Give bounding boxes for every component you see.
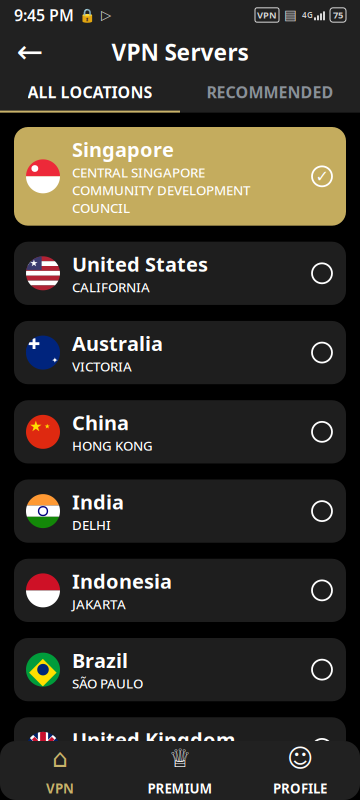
staticText: SÃO PAULO bbox=[72, 675, 143, 692]
staticText: ✓ bbox=[315, 167, 328, 185]
staticText: VPN bbox=[257, 9, 277, 21]
button[interactable]: ✚ bbox=[14, 321, 346, 384]
staticText: Australia bbox=[72, 330, 163, 356]
staticText: ← bbox=[16, 34, 43, 70]
button[interactable]: ★ bbox=[14, 400, 346, 463]
staticText: 9:45 PM bbox=[14, 4, 74, 26]
button[interactable]: ALL LOCATIONS bbox=[0, 74, 180, 112]
staticText: CITY OF LONDON bbox=[72, 754, 180, 771]
staticText: 🔒 bbox=[79, 7, 96, 23]
button[interactable]: Singapore bbox=[14, 127, 346, 226]
staticText: United Kingdom bbox=[72, 726, 236, 753]
staticText: 4G bbox=[302, 10, 313, 20]
staticText: ☺ bbox=[287, 744, 313, 773]
staticText: United States bbox=[72, 251, 208, 277]
button[interactable]: ◆ bbox=[14, 638, 346, 701]
staticText: VPN bbox=[46, 779, 74, 797]
button[interactable]: RECOMMENDED bbox=[180, 74, 360, 112]
staticText: ✕ bbox=[27, 727, 59, 771]
staticText: PREMIUM bbox=[147, 779, 212, 797]
staticText: RECOMMENDED bbox=[206, 81, 333, 103]
staticText: PROFILE bbox=[273, 779, 327, 797]
staticText: ⌂ bbox=[52, 744, 68, 773]
button[interactable]: ✕ bbox=[14, 717, 346, 781]
staticText: India bbox=[72, 488, 124, 515]
staticText: ▤ bbox=[284, 7, 297, 22]
button[interactable]: ☺ bbox=[240, 734, 360, 800]
button[interactable]: ★ bbox=[14, 242, 346, 305]
button[interactable]: ♕ bbox=[120, 734, 240, 800]
staticText: Singapore bbox=[72, 136, 174, 163]
staticText: ♕ bbox=[168, 744, 191, 773]
button[interactable]: ⌂ bbox=[0, 734, 120, 800]
staticText: ★ bbox=[29, 418, 42, 434]
staticText: ★ bbox=[44, 422, 50, 430]
staticText: Brazil bbox=[72, 647, 128, 674]
staticText: CALIFORNIA bbox=[72, 278, 150, 296]
staticText: ✚ bbox=[28, 336, 40, 352]
staticText: CENTRAL SINGAPORE COMMUNITY DEVELOPMENT … bbox=[72, 164, 250, 217]
staticText: DELHI bbox=[72, 516, 111, 534]
button[interactable]: Back bbox=[8, 32, 52, 72]
staticText: ALL LOCATIONS bbox=[27, 81, 152, 103]
staticText: ▷ bbox=[101, 7, 111, 22]
staticText: 75 bbox=[333, 9, 343, 21]
staticText: ✕ bbox=[23, 722, 62, 775]
staticText: China bbox=[72, 409, 129, 436]
staticText: VICTORIA bbox=[72, 357, 132, 375]
staticText: JAKARTA bbox=[72, 595, 126, 613]
button[interactable]: Indonesia bbox=[14, 559, 346, 622]
staticText: ◆ bbox=[29, 649, 57, 690]
staticText: HONG KONG bbox=[72, 437, 153, 454]
staticText: ✦ bbox=[51, 356, 58, 365]
staticText: ★ bbox=[30, 258, 38, 268]
staticText: VPN Servers bbox=[111, 37, 248, 67]
staticText: Indonesia bbox=[72, 568, 172, 594]
button[interactable]: India bbox=[14, 479, 346, 543]
